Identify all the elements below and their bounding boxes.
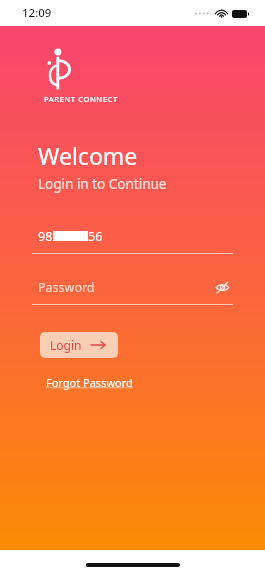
staticText: Login xyxy=(50,337,82,353)
staticText: 56 xyxy=(88,228,103,245)
staticText: 98 xyxy=(38,228,53,245)
button[interactable]: Forgot Password xyxy=(44,373,135,392)
button[interactable]: Password xyxy=(32,276,233,305)
staticText: Login in to Continue xyxy=(38,175,167,193)
staticText: 12:09 xyxy=(22,5,52,21)
button[interactable]: Login xyxy=(40,332,118,358)
staticText: Password xyxy=(38,279,95,296)
button[interactable]: 98 xyxy=(32,225,233,254)
staticText: PARENT CONNECT xyxy=(44,94,118,104)
staticText: Welcome xyxy=(38,140,138,171)
button[interactable]: Show password xyxy=(211,276,233,298)
